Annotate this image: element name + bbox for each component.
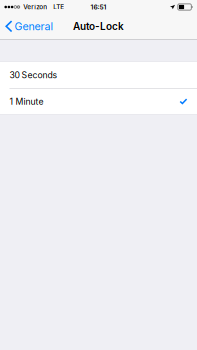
button[interactable]: 30 Seconds	[0, 62, 197, 88]
staticText: 16:51	[90, 3, 106, 11]
staticText: Auto-Lock	[73, 20, 124, 32]
staticText: Verizon	[23, 3, 47, 11]
button[interactable]: General	[0, 16, 58, 37]
staticText: 1 Minute	[10, 96, 44, 107]
staticText: General	[14, 20, 53, 33]
staticText: 30 Seconds	[10, 70, 58, 80]
button[interactable]: 1 Minute	[0, 89, 197, 114]
staticText: LTE	[53, 3, 64, 11]
